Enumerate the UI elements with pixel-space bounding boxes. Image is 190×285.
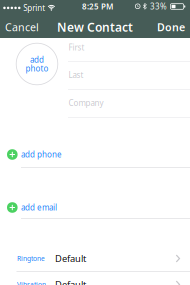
button[interactable]: Cancel <box>5 20 39 34</box>
button[interactable]: Ringtone <box>0 245 190 271</box>
staticText: Done <box>157 20 185 34</box>
button[interactable]: add phone <box>0 141 190 167</box>
staticText: photo <box>25 63 48 74</box>
button[interactable]: Vibration <box>0 271 190 285</box>
staticText: Last <box>68 70 83 80</box>
staticText: Default <box>55 252 86 265</box>
button[interactable]: Done <box>157 20 185 34</box>
staticText: First <box>68 42 84 53</box>
button[interactable]: Last <box>0 62 190 88</box>
button[interactable]: Company <box>0 90 190 116</box>
staticText: 8:25 PM <box>82 1 113 12</box>
staticText: Company <box>68 98 103 108</box>
staticText: Ringtone <box>17 254 45 263</box>
staticText: Cancel <box>5 20 39 34</box>
button[interactable]: add email <box>0 194 190 220</box>
staticText: add phone <box>21 149 62 160</box>
staticText: New Contact <box>57 19 133 35</box>
staticText: add email <box>21 202 57 213</box>
staticText: 33% <box>150 1 167 12</box>
button[interactable]: First <box>0 34 190 60</box>
staticText: Vibration <box>17 280 46 285</box>
button[interactable]: add <box>16 43 58 85</box>
staticText: add <box>30 54 44 65</box>
staticText: Default <box>55 278 86 285</box>
staticText: Sprint <box>23 3 45 13</box>
